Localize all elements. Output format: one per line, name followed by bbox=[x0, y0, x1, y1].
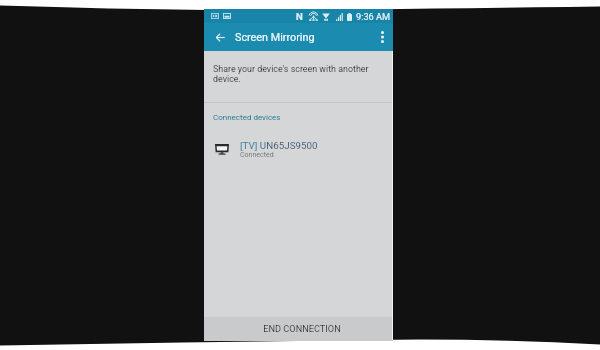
button[interactable]: More options bbox=[371, 26, 393, 48]
staticText: Connected devices bbox=[213, 113, 281, 122]
button[interactable]: END CONNECTION bbox=[204, 317, 393, 341]
staticText: 9:36 AM bbox=[356, 11, 391, 22]
staticText: END CONNECTION bbox=[263, 323, 341, 334]
staticText: Connected bbox=[240, 151, 274, 159]
staticText: Screen Mirroring bbox=[235, 31, 315, 44]
staticText: [TV] UN65JS9500 bbox=[240, 140, 318, 151]
button[interactable]: [TV] UN65JS9500 bbox=[204, 135, 393, 163]
staticText: Share your device's screen with another … bbox=[213, 64, 379, 84]
staticText: N bbox=[296, 11, 303, 22]
button[interactable]: Navigate up bbox=[211, 28, 229, 46]
